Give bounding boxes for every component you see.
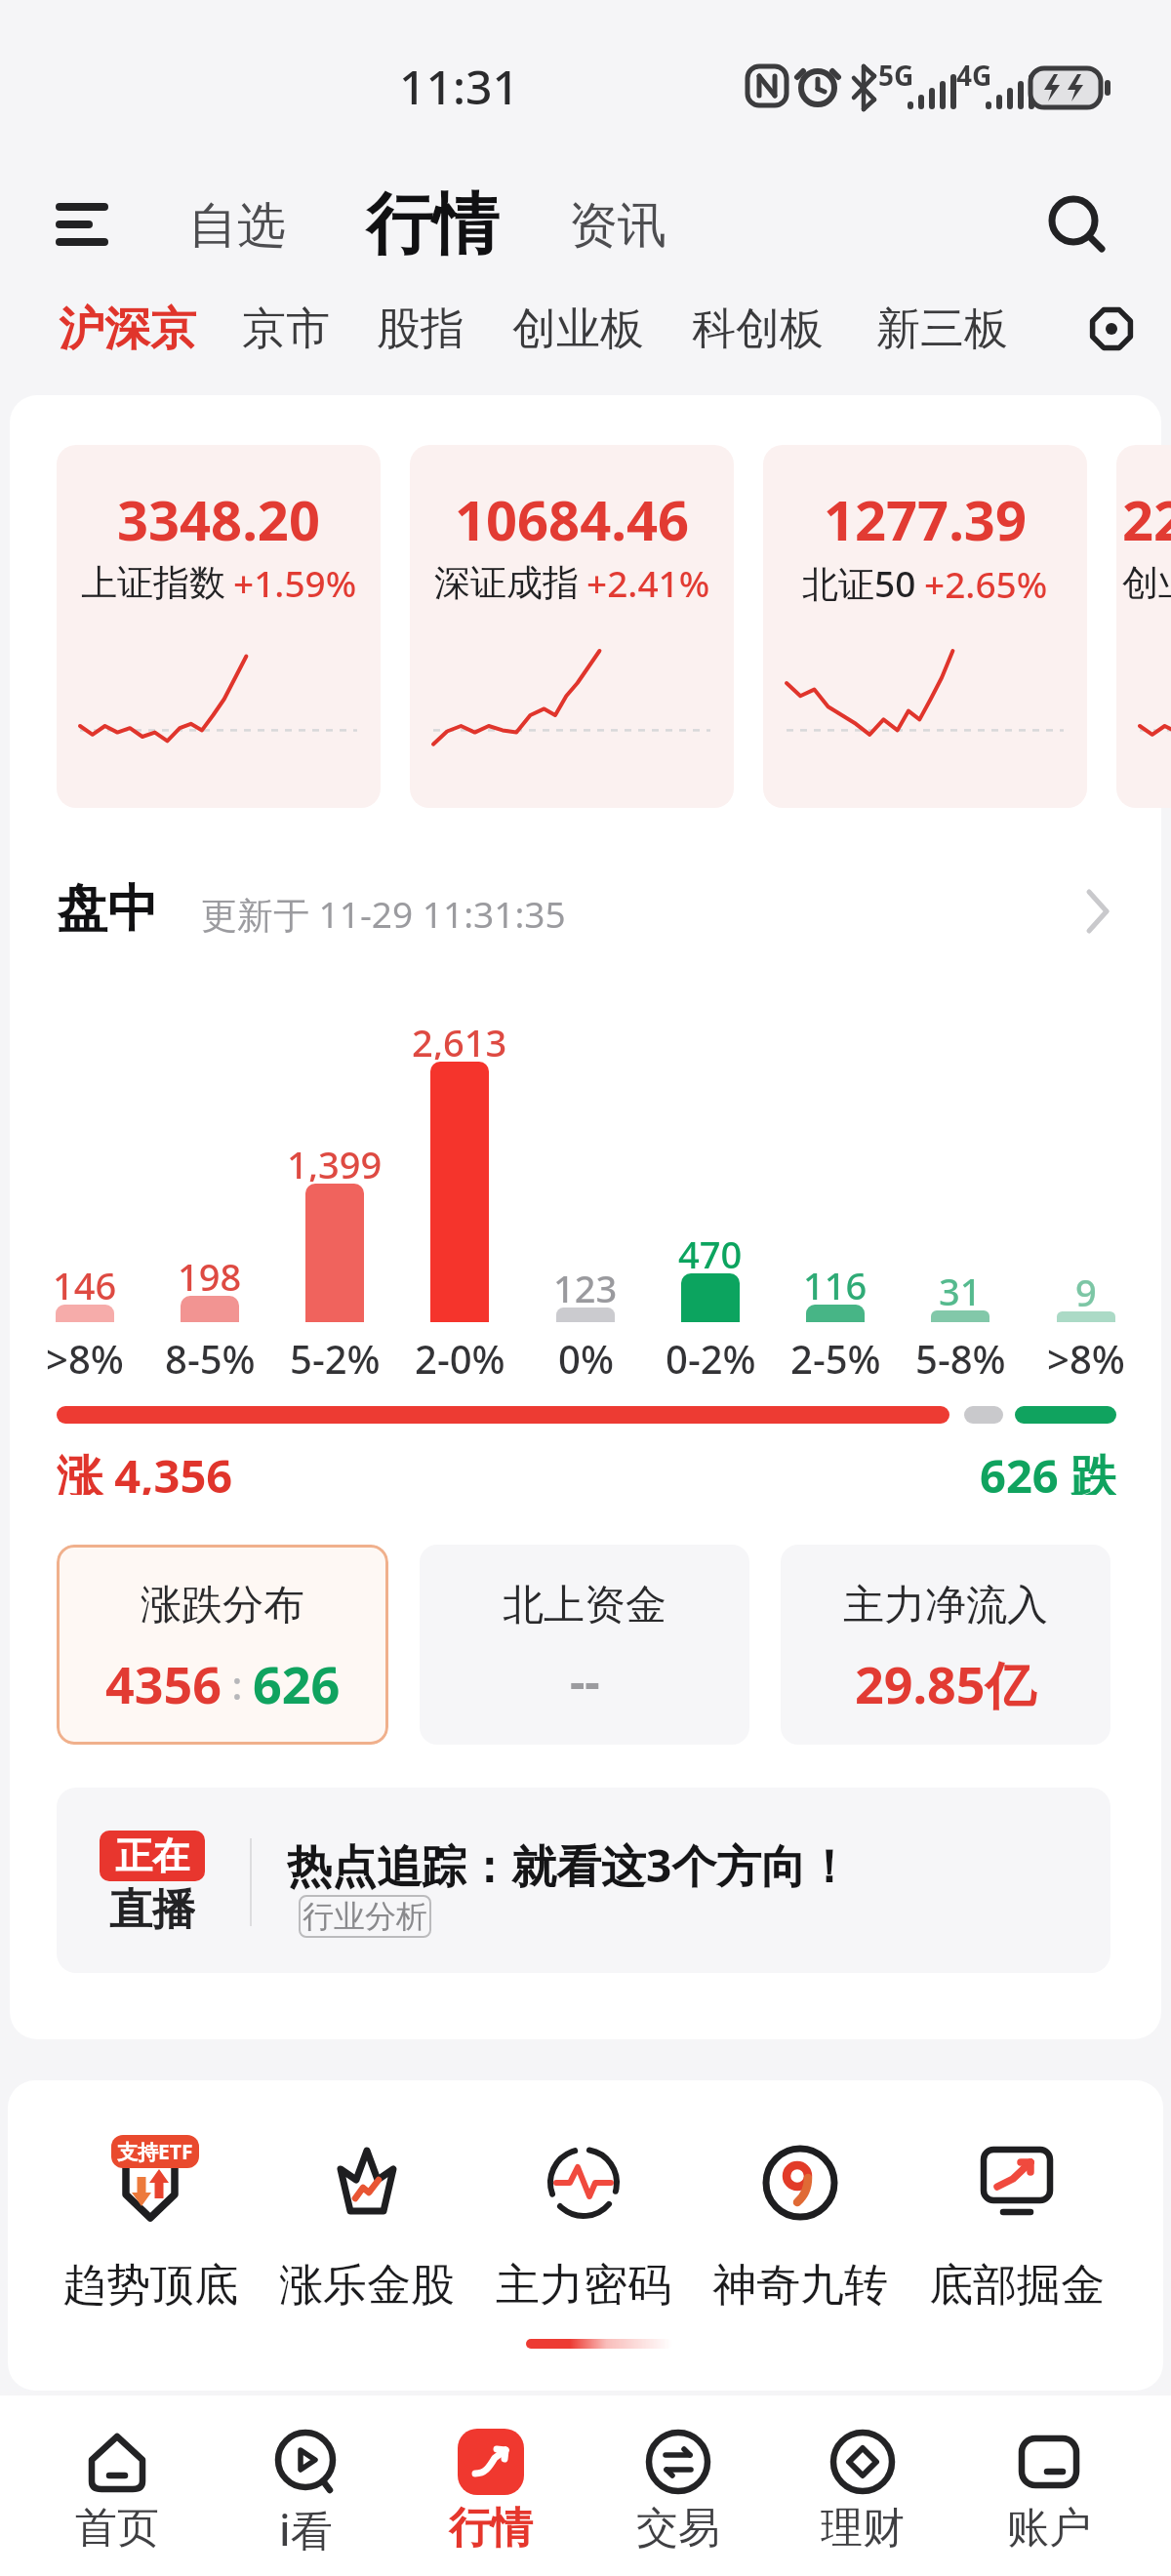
staticText: 神奇九转 <box>712 2258 888 2314</box>
staticText: 470 <box>678 1228 743 1271</box>
button[interactable]: 盘中 <box>57 870 1114 948</box>
staticText: 116 <box>803 1260 868 1303</box>
staticText: 2-5% <box>790 1332 881 1377</box>
button[interactable]: 行情 <box>342 181 522 269</box>
staticText: 资讯 <box>569 195 666 257</box>
button[interactable]: i看 <box>222 2413 388 2576</box>
staticText: 31 <box>939 1266 982 1308</box>
staticText: 北上资金 <box>503 1580 666 1631</box>
button[interactable]: 沪深京 <box>49 299 205 359</box>
staticText: 主力净流入 <box>843 1580 1048 1631</box>
button[interactable]: 交易 <box>595 2413 761 2576</box>
button[interactable]: 3348.20 <box>57 445 381 808</box>
button[interactable]: 10684.46 <box>410 445 734 808</box>
staticText: 趋势顶底 <box>62 2258 238 2314</box>
staticText: : <box>222 1658 253 1711</box>
staticText: 626 <box>253 1649 341 1718</box>
staticText: 2-0% <box>415 1332 505 1377</box>
staticText: 新三板 <box>876 302 1008 357</box>
button[interactable] <box>1069 299 1154 359</box>
staticText: 创业板指 <box>1122 560 1171 606</box>
button[interactable] <box>49 187 117 262</box>
staticText: 4356 <box>105 1649 222 1718</box>
staticText: 自选 <box>188 195 286 257</box>
staticText: 涨乐金股 <box>279 2258 455 2314</box>
staticText: +1.59% <box>233 558 357 607</box>
button[interactable]: 正在 <box>57 1788 1110 1973</box>
staticText: 行业分析 <box>303 1897 427 1936</box>
button[interactable]: 趋势顶底 <box>53 2119 248 2354</box>
staticText: 科创板 <box>692 302 824 357</box>
staticText: 主力密码 <box>496 2258 671 2314</box>
staticText: 京市 <box>242 302 330 357</box>
staticText: 8-5% <box>165 1332 256 1377</box>
button[interactable]: 2272.03 <box>1116 445 1171 808</box>
staticText: 10684.46 <box>455 482 689 546</box>
staticText: 北证50 <box>802 558 916 608</box>
staticText: 涨 4,356 <box>57 1444 233 1495</box>
staticText: +2.41% <box>586 558 710 607</box>
button[interactable]: 股指 <box>369 301 472 357</box>
staticText: 198 <box>178 1251 242 1294</box>
staticText: 沪深京 <box>59 301 196 358</box>
staticText: 5-2% <box>290 1332 381 1377</box>
button[interactable]: 科创板 <box>683 301 831 357</box>
staticText: 146 <box>53 1260 117 1303</box>
button[interactable]: 主力密码 <box>486 2119 681 2354</box>
staticText: 账户 <box>1007 2502 1091 2555</box>
button[interactable]: 涨乐金股 <box>269 2119 464 2354</box>
button[interactable]: 行情 <box>408 2413 574 2576</box>
staticText: 行情 <box>449 2502 533 2555</box>
staticText: i看 <box>279 2501 333 2556</box>
staticText: 5G <box>878 57 914 86</box>
button[interactable] <box>1030 187 1124 262</box>
staticText: 行情 <box>366 183 499 267</box>
button[interactable]: 创业板 <box>504 301 652 357</box>
staticText: 交易 <box>636 2502 720 2555</box>
staticText: 5-8% <box>915 1332 1006 1377</box>
staticText: 2272.03 <box>1122 482 1171 546</box>
staticText: 底部掘金 <box>929 2258 1105 2314</box>
button[interactable]: 主力净流入 <box>781 1545 1110 1745</box>
staticText: 涨跌分布 <box>141 1580 304 1631</box>
staticText: 深证成指 <box>434 560 579 606</box>
staticText: 1,399 <box>287 1139 383 1182</box>
staticText: 0% <box>558 1332 614 1377</box>
staticText: 更新于 11-29 11:31:35 <box>201 889 566 939</box>
staticText: 上证指数 <box>81 560 225 606</box>
staticText: 9 <box>1075 1267 1097 1309</box>
staticText: 首页 <box>75 2502 159 2555</box>
button[interactable]: 账户 <box>966 2413 1132 2576</box>
staticText: 盘中 <box>57 877 158 942</box>
button[interactable]: 底部掘金 <box>919 2119 1114 2354</box>
button[interactable]: 理财 <box>780 2413 946 2576</box>
staticText: 正在 <box>115 1832 189 1879</box>
button[interactable]: 涨跌分布 <box>57 1545 388 1745</box>
staticText: 创业板 <box>512 302 644 357</box>
staticText: 热点追踪：就看这3个方向！ <box>287 1834 852 1893</box>
staticText: 3348.20 <box>117 482 320 546</box>
staticText: 理财 <box>821 2502 905 2555</box>
button[interactable]: 资讯 <box>546 191 688 260</box>
button[interactable]: 首页 <box>34 2413 200 2576</box>
staticText: 123 <box>553 1263 618 1306</box>
staticText: >8% <box>1047 1332 1125 1377</box>
button[interactable]: 神奇九转 <box>703 2119 898 2354</box>
button[interactable]: 京市 <box>234 301 338 357</box>
staticText: 支持ETF <box>117 2138 193 2166</box>
staticText: 2,613 <box>412 1017 507 1060</box>
staticText: 4G <box>956 57 992 86</box>
staticText: 11:31 <box>399 55 519 113</box>
staticText: 直播 <box>109 1883 195 1934</box>
button[interactable]: 北上资金 <box>420 1545 749 1745</box>
staticText: 626 跌 <box>980 1444 1116 1495</box>
staticText: 1277.39 <box>824 482 1027 546</box>
staticText: +2.65% <box>924 559 1048 608</box>
staticText: 29.85亿 <box>855 1649 1036 1718</box>
staticText: -- <box>570 1649 600 1712</box>
staticText: >8% <box>46 1332 124 1377</box>
staticText: 0-2% <box>666 1332 756 1377</box>
button[interactable]: 自选 <box>166 191 307 260</box>
button[interactable]: 1277.39 <box>763 445 1087 808</box>
button[interactable]: 新三板 <box>868 301 1016 357</box>
